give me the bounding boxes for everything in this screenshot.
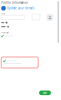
staticText: Save <box>42 91 47 94</box>
staticText: Verification <box>1 32 9 34</box>
staticText: Name <box>1 13 5 14</box>
staticText: i <box>3 6 4 10</box>
staticText: Update your details <box>7 6 34 10</box>
staticText: Profile Information <box>1 1 28 4</box>
button[interactable]: Save <box>39 90 51 95</box>
